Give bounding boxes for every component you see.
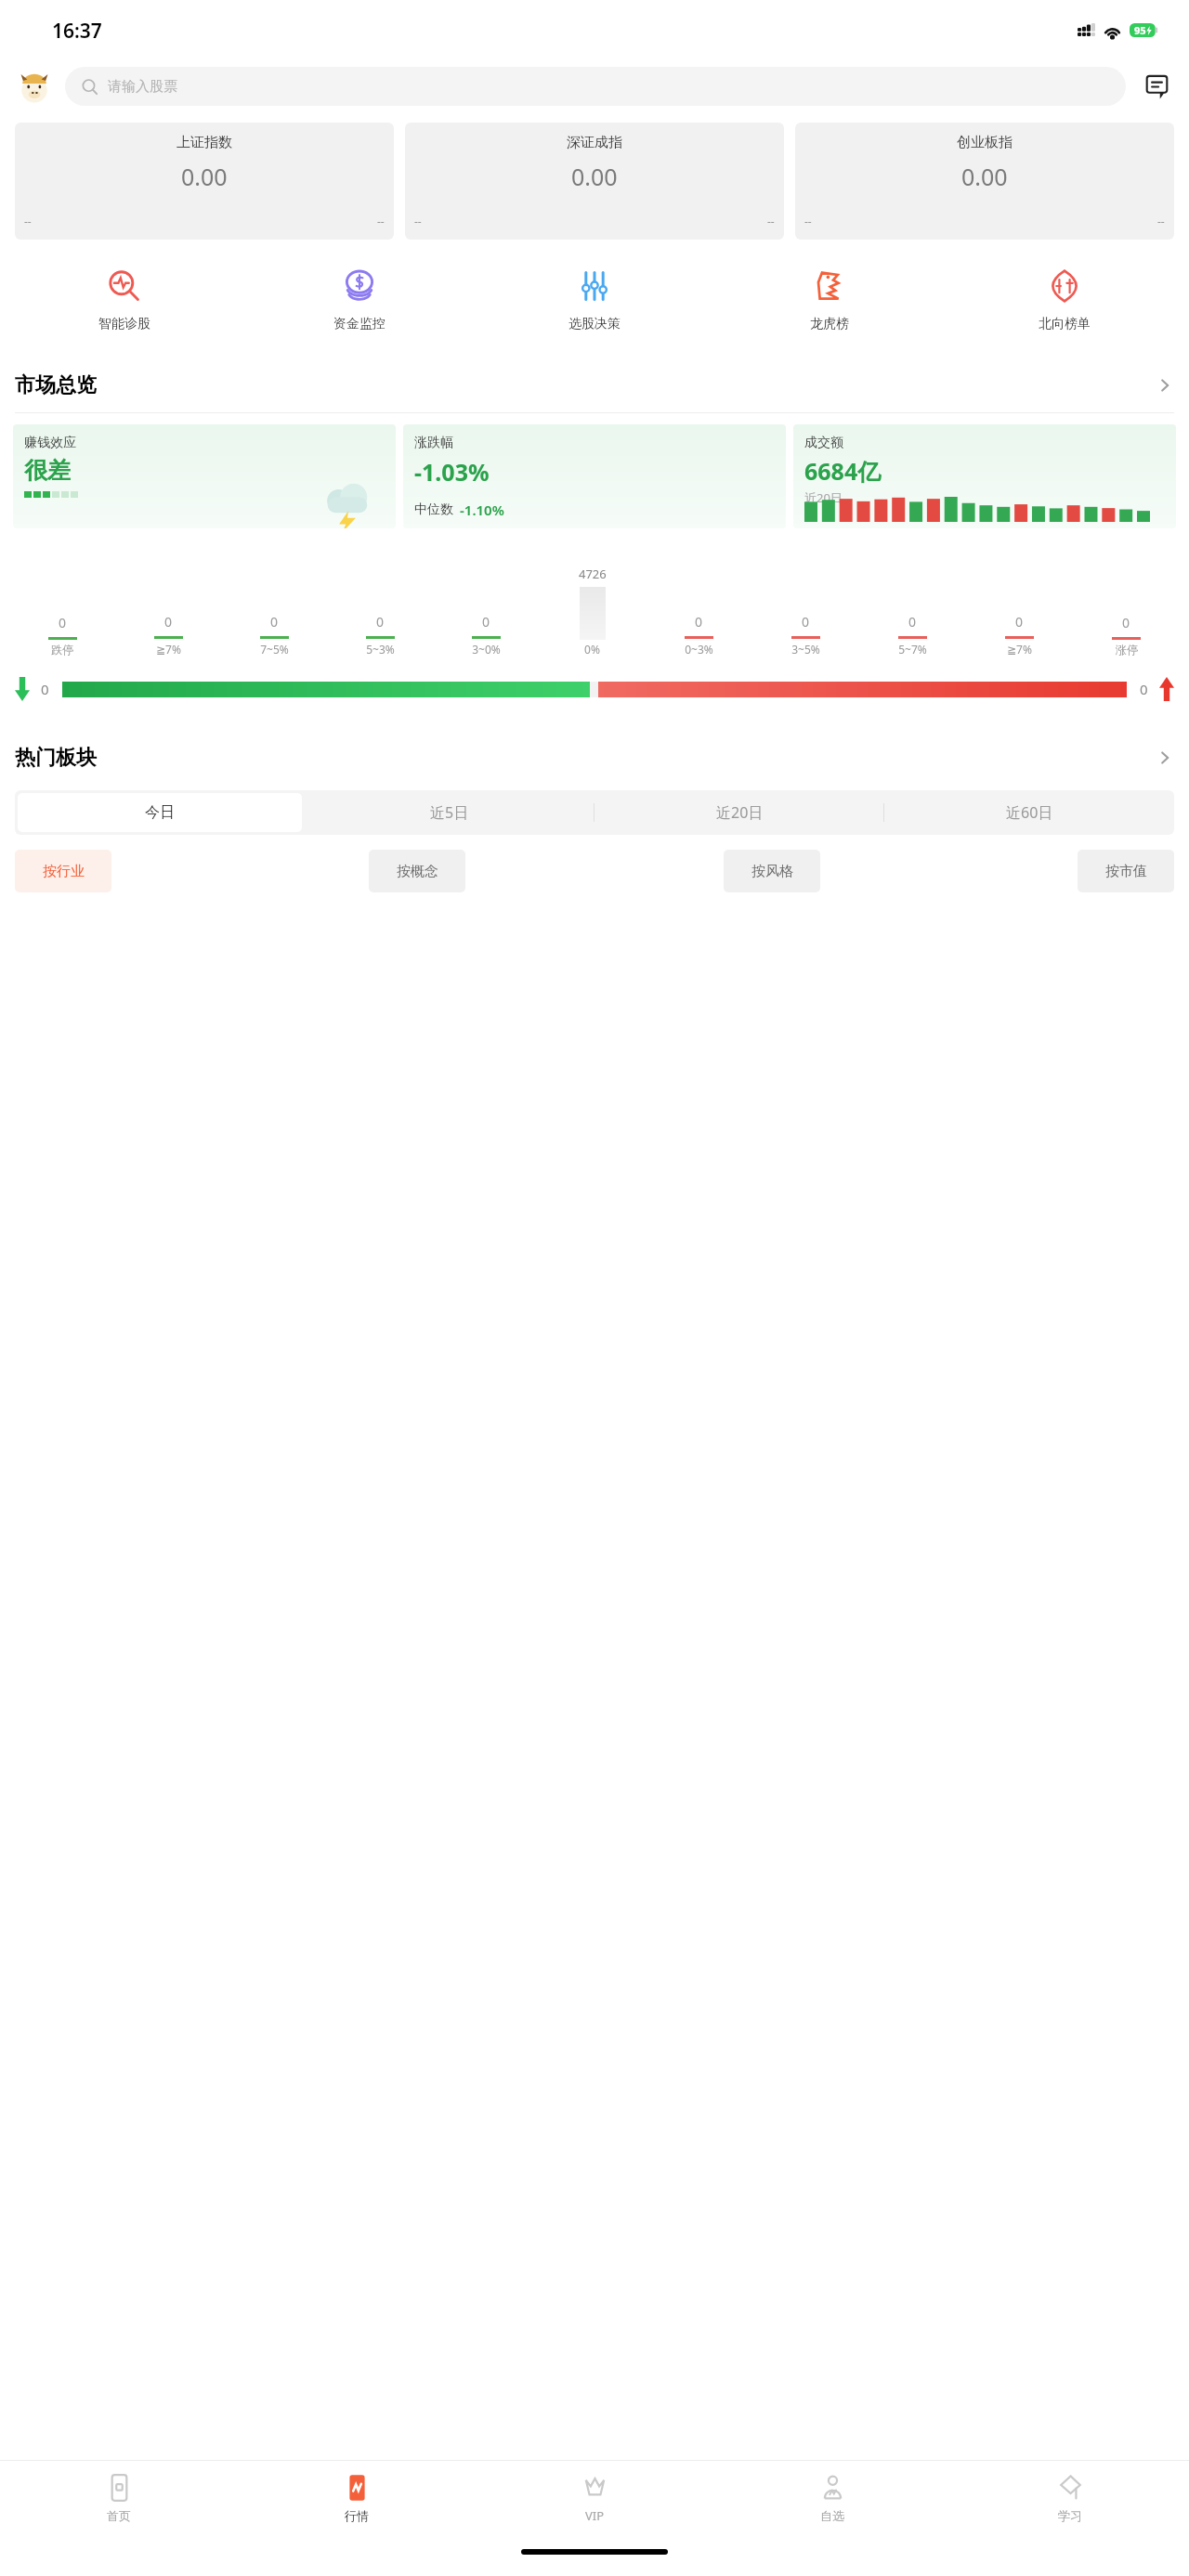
staticText: 0	[164, 613, 173, 631]
staticText: 按行业	[43, 863, 85, 880]
staticText: 0.00	[961, 161, 1008, 192]
staticText: 0	[376, 613, 385, 631]
staticText: 0	[1122, 614, 1130, 631]
button[interactable]: 北向榜单	[947, 264, 1182, 336]
staticText: 5~3%	[366, 642, 395, 657]
staticText: --	[377, 214, 385, 228]
button[interactable]: 深证成指	[405, 123, 784, 240]
staticText: 近20日	[716, 802, 764, 823]
staticText: 按概念	[397, 863, 438, 880]
button[interactable]: 近60日	[884, 790, 1174, 835]
staticText: 0.00	[571, 161, 618, 192]
staticText: 4726	[579, 566, 607, 582]
staticText: 跌停	[51, 643, 73, 657]
button[interactable]: 市场总览	[0, 364, 1189, 407]
staticText: 北向榜单	[1039, 316, 1091, 332]
staticText: 资金监控	[333, 316, 385, 332]
staticText: 上证指数	[176, 134, 232, 151]
staticText: 95	[1134, 23, 1146, 37]
button[interactable]: 热门板块	[0, 736, 1189, 779]
button[interactable]: 成交额	[793, 424, 1176, 528]
staticText: 按市值	[1105, 863, 1147, 880]
button[interactable]: 按概念	[369, 850, 465, 892]
staticText: 0	[695, 613, 703, 631]
staticText: 0.00	[181, 161, 228, 192]
staticText: --	[767, 214, 775, 228]
button[interactable]: 近20日	[594, 790, 884, 835]
staticText: --	[1157, 214, 1165, 228]
button[interactable]: 资金监控	[242, 264, 477, 336]
staticText: 0	[41, 680, 49, 698]
staticText: 5~7%	[898, 642, 927, 657]
button[interactable]: 近5日	[305, 790, 594, 835]
staticText: 3~0%	[472, 642, 501, 657]
staticText: 智能诊股	[98, 316, 150, 332]
button[interactable]: 上证指数	[15, 123, 394, 240]
staticText: 热门板块	[15, 745, 97, 771]
staticText: 行情	[345, 2508, 369, 2523]
staticText: 按风格	[751, 863, 793, 880]
staticText: 学习	[1058, 2508, 1082, 2523]
staticText: --	[414, 214, 422, 228]
staticText: 市场总览	[15, 372, 97, 398]
staticText: 0	[908, 613, 917, 631]
staticText: ≧7%	[156, 642, 181, 657]
staticText: 创业板指	[957, 134, 1013, 151]
staticText: 首页	[107, 2508, 131, 2523]
staticText: 涨跌幅	[414, 435, 453, 451]
staticText: 请输入股票	[108, 78, 177, 96]
button[interactable]: 按行业	[15, 850, 111, 892]
staticText: 涨停	[1116, 643, 1138, 657]
staticText: -1.03%	[414, 456, 490, 488]
staticText: 16:37	[52, 18, 102, 45]
button[interactable]: 请输入股票	[65, 67, 1126, 106]
staticText: 深证成指	[567, 134, 622, 151]
staticText: 龙虎榜	[810, 316, 849, 332]
button[interactable]: 学习	[951, 2461, 1189, 2535]
staticText: 近60日	[1006, 802, 1053, 823]
button[interactable]: 创业板指	[795, 123, 1174, 240]
button[interactable]: 龙虎榜	[712, 264, 947, 336]
staticText: 0	[482, 613, 490, 631]
button[interactable]: 智能诊股	[7, 264, 242, 336]
staticText: 3~5%	[791, 642, 820, 657]
staticText: --	[804, 214, 812, 228]
staticText: 今日	[145, 803, 175, 822]
staticText: -1.10%	[460, 501, 504, 519]
button[interactable]: 涨跌幅	[403, 424, 786, 528]
button[interactable]: 行情	[238, 2461, 476, 2535]
staticText: 中位数	[414, 501, 453, 518]
button[interactable]: 自选	[713, 2461, 951, 2535]
staticText: 很差	[24, 456, 71, 485]
staticText: 0%	[584, 642, 600, 657]
button[interactable]: 今日	[18, 793, 302, 832]
staticText: 0	[59, 614, 67, 631]
staticText: VIP	[585, 2507, 605, 2524]
staticText: 近20日	[804, 489, 843, 506]
button[interactable]: 选股决策	[477, 264, 712, 336]
staticText: 赚钱效应	[24, 435, 76, 451]
button[interactable]: 赚钱效应	[13, 424, 396, 528]
staticText: 0	[802, 613, 810, 631]
button[interactable]: 按风格	[724, 850, 820, 892]
button[interactable]: Messages	[1139, 69, 1174, 104]
button[interactable]: 首页	[0, 2461, 238, 2535]
staticText: --	[24, 214, 32, 228]
staticText: 选股决策	[568, 316, 621, 332]
staticText: 0~3%	[685, 642, 713, 657]
staticText: 7~5%	[260, 642, 289, 657]
staticText: 自选	[820, 2508, 844, 2523]
button[interactable]: User avatar	[15, 67, 54, 106]
staticText: 0	[270, 613, 279, 631]
staticText: 近5日	[430, 802, 469, 823]
staticText: 成交额	[804, 435, 843, 451]
button[interactable]: VIP	[476, 2461, 713, 2535]
staticText: 6684亿	[804, 455, 882, 487]
staticText: ≧7%	[1007, 642, 1032, 657]
staticText: 0	[1140, 680, 1148, 698]
button[interactable]: 按市值	[1078, 850, 1174, 892]
staticText: 0	[1015, 613, 1024, 631]
